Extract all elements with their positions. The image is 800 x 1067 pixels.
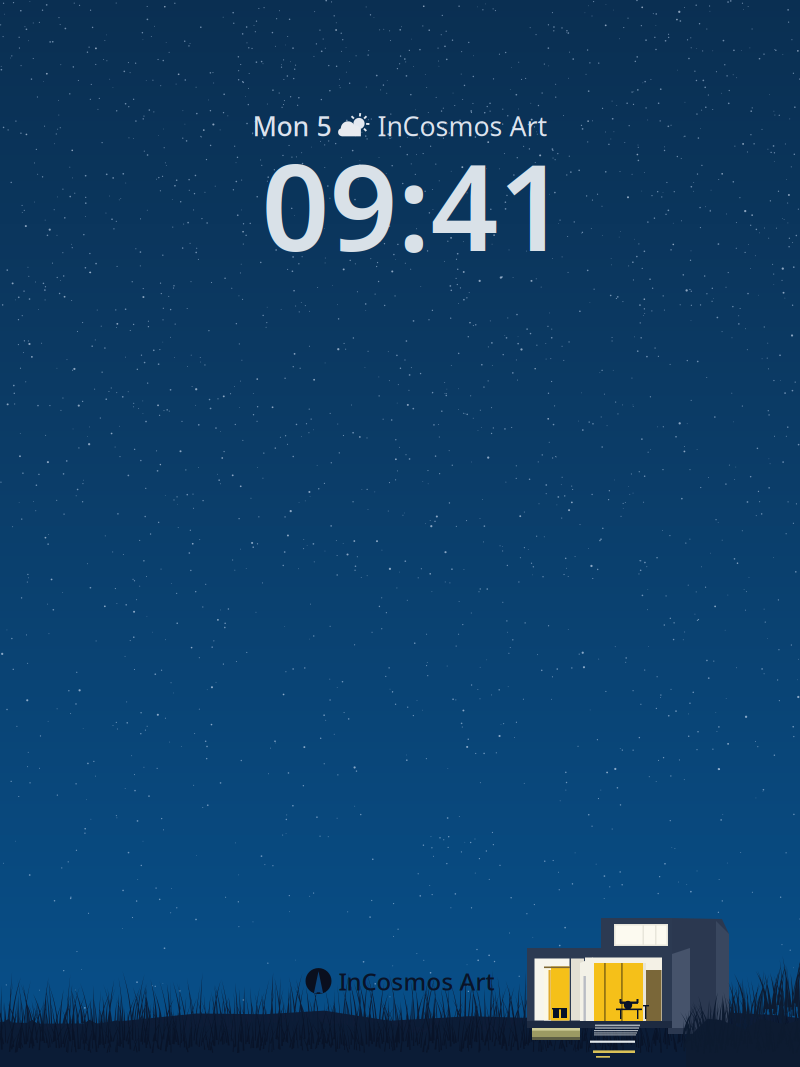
staticText: 09:41	[261, 126, 566, 284]
staticText: InCosmos Art	[338, 965, 494, 997]
staticText: Mon 5	[252, 108, 331, 144]
button[interactable]: Mon 5	[252, 110, 547, 142]
staticText: InCosmos Art	[377, 108, 547, 144]
button[interactable]: InCosmos Art	[305, 965, 494, 997]
